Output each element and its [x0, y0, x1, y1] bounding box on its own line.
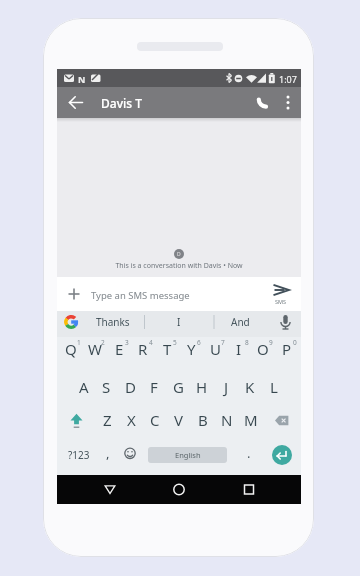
staticText: 5	[173, 338, 177, 347]
button[interactable]: D	[118, 371, 142, 406]
staticText: Q	[65, 339, 77, 359]
button[interactable]: N	[215, 406, 239, 440]
staticText: C	[150, 410, 160, 430]
button[interactable]	[277, 90, 299, 112]
button[interactable]: J	[214, 371, 238, 406]
button[interactable]	[250, 90, 276, 116]
button[interactable]: Y	[179, 337, 203, 371]
button[interactable]: X	[119, 406, 143, 440]
staticText: This is a conversation with Davis • Now	[57, 261, 301, 271]
button[interactable]	[234, 475, 264, 504]
staticText: And	[231, 315, 250, 329]
staticText: U	[210, 339, 221, 359]
staticText: F	[150, 377, 158, 397]
button[interactable]: G	[166, 371, 190, 406]
staticText: H	[196, 377, 208, 397]
staticText: M	[244, 410, 258, 430]
staticText: I	[177, 315, 181, 329]
button[interactable]: W	[83, 337, 107, 371]
button[interactable]: R	[131, 337, 155, 371]
staticText: N	[78, 73, 86, 85]
button[interactable]: Z	[95, 406, 119, 440]
staticText: 2	[101, 338, 105, 347]
button[interactable]	[270, 311, 301, 337]
button[interactable]: S	[95, 371, 118, 406]
staticText: D	[125, 377, 136, 397]
button[interactable]: T	[155, 337, 179, 371]
staticText: N	[221, 410, 233, 430]
button[interactable]: H	[190, 371, 214, 406]
staticText: V	[174, 410, 184, 430]
button[interactable]: M	[239, 406, 263, 440]
staticText: Thanks	[96, 315, 130, 329]
staticText: 6	[197, 338, 201, 347]
button[interactable]	[272, 445, 292, 465]
staticText: Type an SMS message	[91, 289, 190, 302]
button[interactable]: L	[262, 371, 286, 406]
staticText: D	[177, 251, 181, 258]
staticText: E	[115, 339, 124, 359]
button[interactable]	[61, 312, 81, 332]
staticText: .	[247, 444, 251, 462]
staticText: 1	[77, 338, 81, 347]
staticText: 1:07	[279, 73, 297, 85]
staticText: P	[282, 339, 292, 359]
button[interactable]: E	[107, 337, 131, 371]
staticText: 4	[149, 338, 153, 347]
staticText: O	[257, 339, 269, 359]
staticText: A	[79, 377, 89, 397]
button[interactable]	[95, 475, 125, 504]
button[interactable]: U	[203, 337, 227, 371]
button[interactable]: O	[251, 337, 275, 371]
button[interactable]	[263, 406, 301, 440]
button[interactable]: .	[238, 437, 260, 472]
button[interactable]: ,	[97, 437, 119, 472]
button[interactable]: V	[167, 406, 191, 440]
button[interactable]	[63, 90, 89, 116]
staticText: ?123	[68, 448, 90, 462]
staticText: 8	[245, 338, 249, 347]
staticText: English	[175, 450, 201, 460]
staticText: L	[270, 377, 278, 397]
staticText: K	[245, 377, 255, 397]
button[interactable]: F	[142, 371, 166, 406]
staticText: 0	[293, 338, 297, 347]
button[interactable]	[87, 277, 263, 311]
button[interactable]: K	[238, 371, 262, 406]
button[interactable]: I	[153, 309, 205, 335]
staticText: SMS	[275, 298, 287, 305]
staticText: 7	[221, 338, 225, 347]
staticText: B	[198, 410, 208, 430]
staticText: X	[127, 410, 136, 430]
staticText: 3	[125, 338, 129, 347]
staticText: S	[102, 377, 111, 397]
staticText: Z	[103, 410, 112, 430]
staticText: W	[88, 339, 102, 359]
button[interactable]: ?123	[59, 437, 99, 472]
button[interactable]	[57, 406, 95, 440]
button[interactable]	[164, 475, 194, 504]
button[interactable]: A	[72, 371, 95, 406]
button[interactable]: Q	[59, 337, 83, 371]
button[interactable]	[263, 279, 297, 309]
button[interactable]: Thanks	[87, 309, 139, 335]
staticText: Y	[187, 339, 196, 359]
button[interactable]: C	[143, 406, 167, 440]
staticText: I	[236, 339, 242, 359]
button[interactable]	[119, 440, 141, 475]
button[interactable]: B	[191, 406, 215, 440]
staticText: J	[224, 377, 229, 397]
button[interactable]	[61, 279, 87, 309]
button[interactable]: And	[214, 309, 266, 335]
staticText: Davis T	[101, 95, 142, 111]
staticText: G	[173, 377, 184, 397]
staticText: ,	[106, 444, 110, 462]
staticText: T	[163, 339, 172, 359]
staticText: R	[138, 339, 148, 359]
button[interactable]: English	[148, 447, 227, 463]
button[interactable]: I	[227, 337, 251, 371]
staticText: 9	[269, 338, 273, 347]
button[interactable]: P	[275, 337, 299, 371]
